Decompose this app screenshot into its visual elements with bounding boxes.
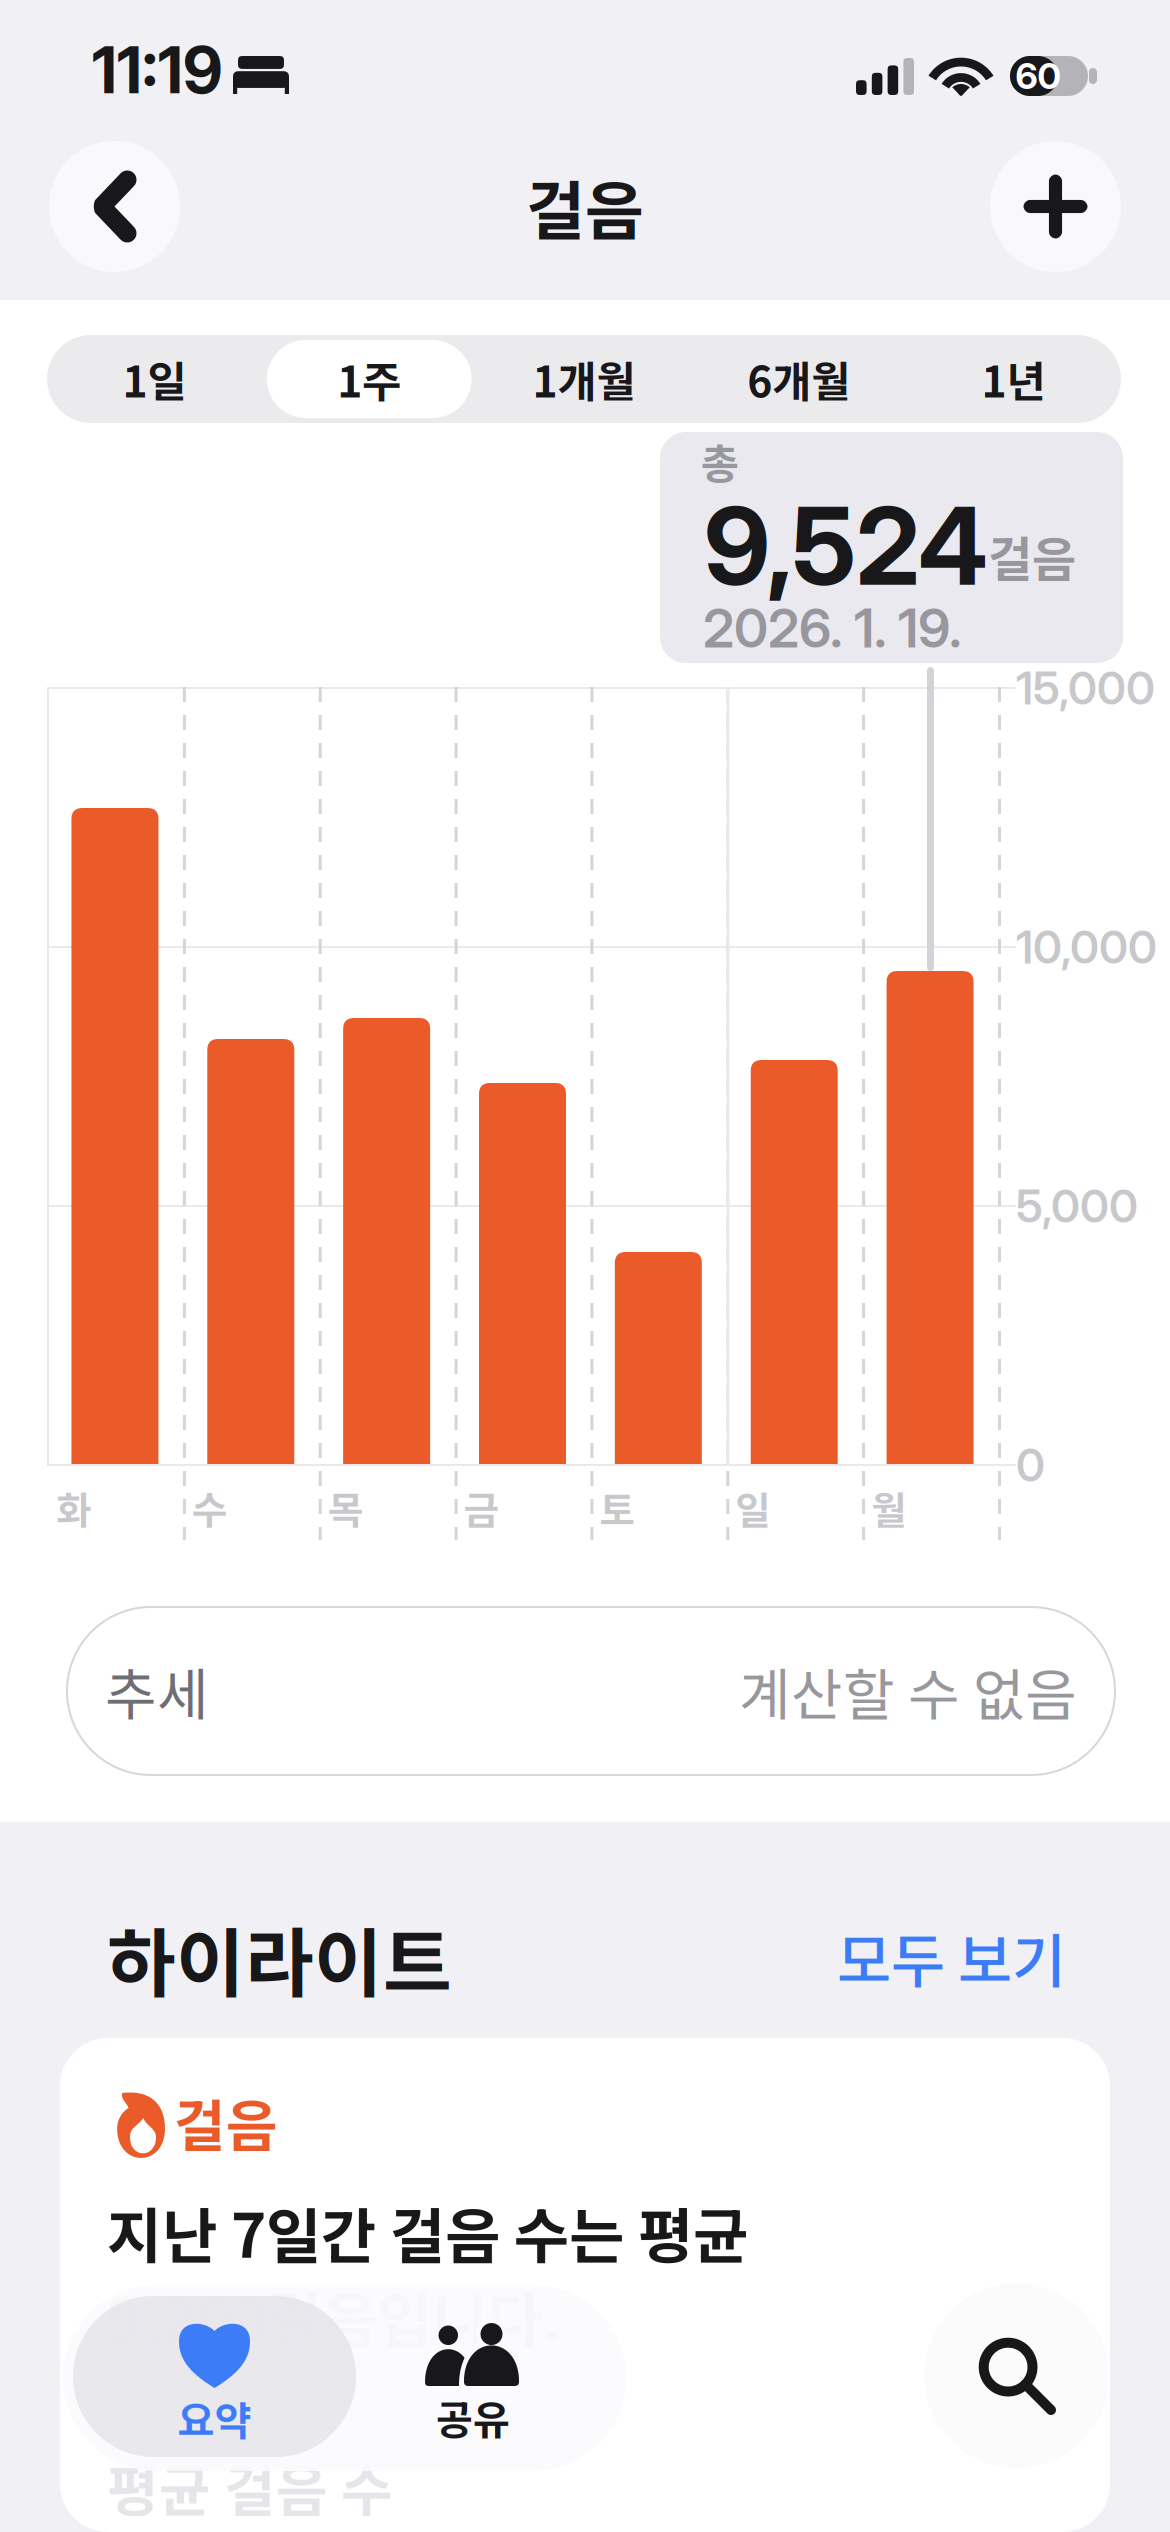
staticText: 60 (1015, 54, 1060, 98)
staticText: 일 (735, 1480, 771, 1536)
staticText: 지난 7일간 걸음 수는 평균 (107, 2189, 748, 2275)
button[interactable]: 6개월 (691, 335, 906, 423)
staticText: 2026. 1. 19. (703, 596, 962, 660)
button[interactable]: 공유 (356, 2285, 626, 2471)
staticText: 추세 (105, 1650, 209, 1732)
button[interactable]: 추세 (67, 1607, 1115, 1775)
staticText: 15,000 (1016, 661, 1155, 715)
staticText: 5,000 (1016, 1179, 1138, 1233)
staticText: 6개월 (747, 348, 850, 410)
staticText: 걸음 (174, 2081, 278, 2163)
staticText: 10,000 (1016, 920, 1157, 974)
button[interactable]: 모두 보기 (766, 1917, 1066, 1997)
button[interactable]: 데이터 추가 (990, 141, 1121, 272)
staticText: 하이라이트 (107, 1904, 452, 2012)
staticText: 걸음 (988, 521, 1076, 591)
staticText: 목 (328, 1480, 364, 1536)
staticText: 화 (56, 1480, 92, 1536)
staticText: 총 (701, 431, 739, 491)
button[interactable]: 1년 (906, 335, 1121, 423)
button[interactable]: 1개월 (477, 335, 691, 423)
staticText: 걸음 (526, 160, 644, 253)
staticText: 요약 (177, 2389, 251, 2447)
staticText: 공유 (436, 2388, 510, 2446)
staticText: 토 (599, 1480, 635, 1536)
staticText: 월 (871, 1480, 907, 1536)
staticText: 금 (464, 1480, 500, 1536)
staticText: 1개월 (532, 348, 635, 410)
button[interactable]: 뒤로 (49, 141, 180, 272)
staticText: 1일 (122, 348, 186, 410)
button[interactable]: 1일 (47, 335, 262, 423)
staticText: 9,209걸음입니다. (107, 2273, 562, 2359)
staticText: 9,524 (704, 481, 988, 611)
staticText: 계산할 수 없음 (739, 1650, 1077, 1732)
button[interactable]: 1주 (262, 335, 477, 423)
staticText: 모두 보기 (837, 1914, 1066, 1999)
button[interactable]: 요약 (73, 2285, 356, 2471)
staticText: 평균 걸음 수 (107, 2446, 393, 2528)
staticText: 수 (192, 1480, 228, 1536)
staticText: 0 (1016, 1438, 1045, 1492)
staticText: 1주 (337, 348, 401, 410)
staticText: 11:19 (92, 31, 223, 109)
staticText: 1년 (982, 348, 1046, 410)
button[interactable]: 검색 (924, 2283, 1109, 2468)
